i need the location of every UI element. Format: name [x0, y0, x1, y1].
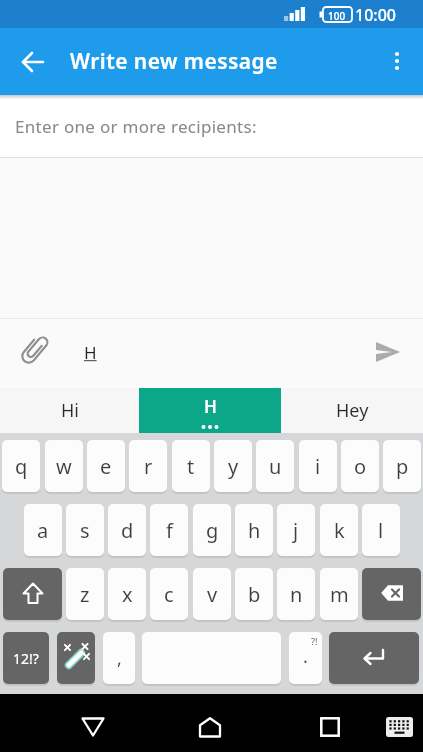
button[interactable]: p — [383, 440, 421, 492]
button[interactable]: g — [193, 504, 231, 556]
button[interactable] — [70, 707, 116, 747]
staticText: h — [248, 517, 261, 544]
button[interactable]: d — [108, 504, 146, 556]
staticText: n — [290, 581, 303, 608]
button[interactable]: t — [172, 440, 210, 492]
button[interactable]: z — [66, 568, 104, 620]
button[interactable] — [10, 39, 56, 85]
button[interactable]: c — [150, 568, 188, 620]
staticText: k — [334, 517, 345, 544]
button[interactable]: e — [87, 440, 125, 492]
staticText: r — [144, 453, 153, 480]
staticText: Enter one or more recipients: — [15, 115, 257, 138]
button[interactable] — [307, 707, 353, 747]
button[interactable] — [376, 709, 422, 745]
button[interactable] — [379, 43, 415, 79]
staticText: w — [56, 453, 72, 480]
button[interactable]: x — [108, 568, 146, 620]
button[interactable] — [362, 568, 421, 620]
staticText: 12!? — [13, 649, 39, 668]
staticText: 10:00 — [355, 4, 396, 26]
button[interactable]: s — [66, 504, 104, 556]
button[interactable] — [3, 568, 62, 620]
button[interactable] — [10, 326, 58, 374]
staticText: q — [15, 453, 28, 480]
staticText: l — [378, 517, 384, 544]
staticText: b — [248, 581, 261, 608]
staticText: . — [303, 644, 308, 669]
button[interactable]: w — [45, 440, 83, 492]
button[interactable]: Hi — [0, 388, 139, 433]
button[interactable]: i — [299, 440, 337, 492]
button[interactable]: o — [341, 440, 379, 492]
staticText: g — [206, 517, 219, 544]
staticText: , — [117, 646, 122, 671]
button[interactable]: Enter one or more recipients: — [0, 95, 423, 158]
button[interactable]: h — [235, 504, 273, 556]
button[interactable]: b — [235, 568, 273, 620]
staticText: Write new message — [70, 47, 278, 76]
button[interactable]: 12!? — [3, 632, 49, 684]
button[interactable] — [329, 632, 419, 684]
button[interactable]: k — [320, 504, 358, 556]
staticText: e — [100, 453, 112, 480]
button[interactable]: j — [277, 504, 315, 556]
staticText: a — [37, 517, 49, 544]
button[interactable]: . — [289, 632, 322, 684]
staticText: o — [354, 453, 367, 480]
button[interactable]: n — [277, 568, 315, 620]
button[interactable]: Hey — [281, 388, 423, 433]
button[interactable]: u — [256, 440, 294, 492]
staticText: t — [187, 453, 195, 480]
staticText: p — [396, 453, 409, 480]
button[interactable]: f — [150, 504, 188, 556]
button[interactable]: H — [139, 388, 281, 433]
staticText: y — [228, 453, 239, 480]
staticText: Hey — [336, 398, 369, 423]
staticText: Hi — [61, 398, 79, 423]
staticText: z — [80, 581, 90, 608]
staticText: c — [164, 581, 174, 608]
button[interactable]: , — [103, 632, 135, 684]
staticText: j — [293, 517, 299, 544]
staticText: f — [166, 517, 173, 544]
staticText: H — [204, 395, 217, 418]
button[interactable]: m — [320, 568, 358, 620]
button[interactable]: q — [2, 440, 40, 492]
staticText: d — [121, 517, 134, 544]
button[interactable]: v — [193, 568, 231, 620]
staticText: v — [207, 581, 218, 608]
button[interactable] — [365, 331, 411, 377]
staticText: u — [269, 453, 282, 480]
staticText: H — [84, 341, 97, 364]
staticText: ?! — [311, 635, 318, 647]
button[interactable]: y — [214, 440, 252, 492]
staticText: s — [80, 517, 90, 544]
staticText: m — [330, 581, 349, 608]
staticText: x — [122, 581, 133, 608]
button[interactable] — [57, 632, 95, 684]
button[interactable]: a — [24, 504, 62, 556]
button[interactable]: r — [129, 440, 167, 492]
staticText: 100 — [328, 9, 346, 23]
staticText: i — [315, 453, 321, 480]
button[interactable] — [187, 707, 233, 747]
button[interactable]: l — [362, 504, 400, 556]
